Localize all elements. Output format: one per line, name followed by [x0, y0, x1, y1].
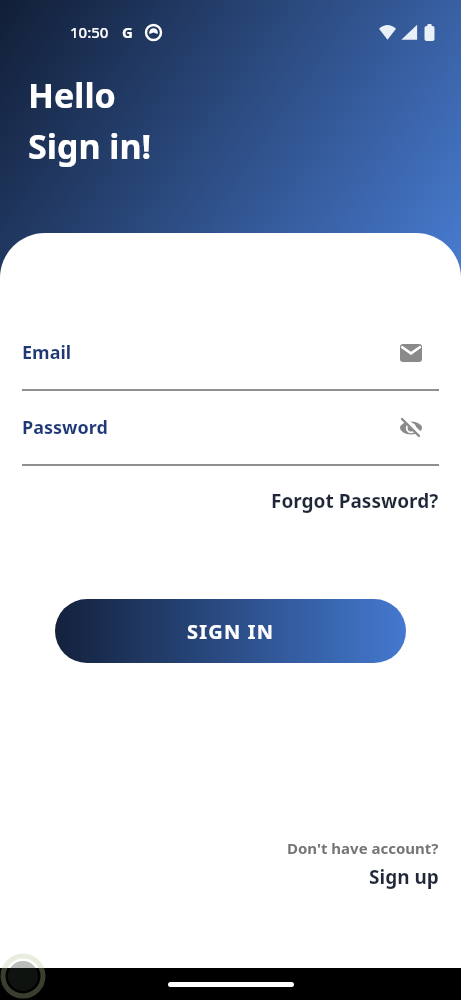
button[interactable]: SIGN IN — [55, 599, 406, 663]
staticText: G — [122, 22, 133, 42]
button[interactable]: Password — [22, 415, 439, 440]
button[interactable]: Email — [22, 340, 439, 365]
staticText: Email — [22, 340, 72, 365]
staticText: Password — [22, 415, 108, 440]
button[interactable]: Forgot Password? — [271, 488, 439, 514]
staticText: Sign up — [369, 864, 439, 890]
button[interactable]: Sign up — [369, 864, 439, 890]
staticText: Hello — [28, 72, 116, 118]
staticText: 10:50 — [70, 22, 109, 42]
staticText: Forgot Password? — [271, 488, 439, 514]
staticText: SIGN IN — [187, 618, 275, 645]
staticText: Don't have account? — [287, 838, 439, 858]
staticText: Sign in! — [28, 123, 152, 169]
